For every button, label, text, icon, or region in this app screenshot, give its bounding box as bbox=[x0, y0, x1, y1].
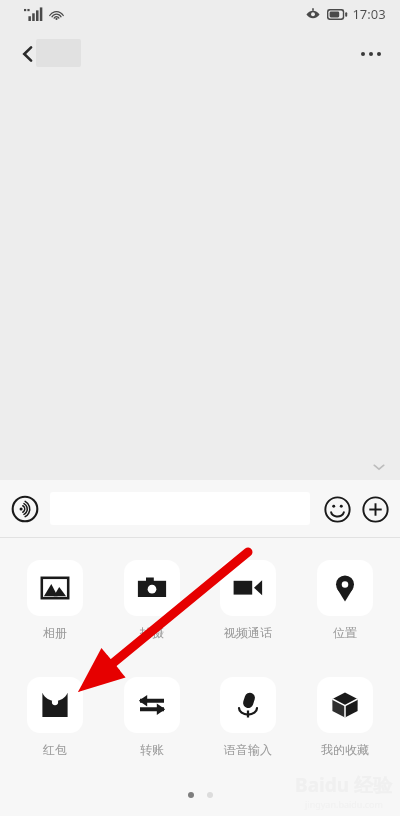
staticText: Baidu 经验 bbox=[295, 772, 392, 798]
button[interactable]: More bbox=[360, 494, 390, 524]
staticText: 视频通话 bbox=[224, 625, 272, 640]
button[interactable]: 拍摄 bbox=[111, 560, 193, 640]
button[interactable]: 位置 bbox=[304, 560, 386, 640]
staticText: 位置 bbox=[333, 625, 357, 640]
button[interactable]: 视频通话 bbox=[207, 560, 289, 640]
button[interactable]: Voice message bbox=[10, 494, 40, 524]
button[interactable]: Back bbox=[6, 32, 50, 76]
button[interactable]: 转账 bbox=[111, 677, 193, 757]
button[interactable]: Emoji bbox=[322, 494, 352, 524]
staticText: 语音输入 bbox=[224, 742, 272, 757]
staticText: 17:03 bbox=[352, 5, 386, 23]
staticText: 拍摄 bbox=[140, 625, 164, 640]
staticText: 我的收藏 bbox=[321, 742, 369, 757]
staticText: 红包 bbox=[43, 742, 67, 757]
staticText: 转账 bbox=[140, 742, 164, 757]
button[interactable]: 相册 bbox=[14, 560, 96, 640]
button[interactable]: 红包 bbox=[14, 677, 96, 757]
button[interactable]: More options bbox=[348, 31, 394, 77]
button[interactable]: 语音输入 bbox=[207, 677, 289, 757]
button[interactable]: 我的收藏 bbox=[304, 677, 386, 757]
staticText: 相册 bbox=[43, 625, 67, 640]
